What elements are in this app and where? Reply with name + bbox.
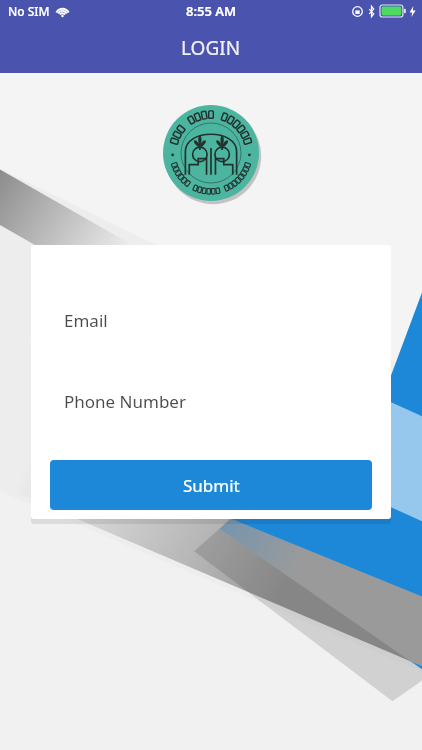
button[interactable]: Email: [31, 307, 391, 333]
staticText: Submit: [183, 474, 240, 497]
staticText: Phone Number: [64, 390, 186, 413]
button[interactable]: Phone Number: [31, 388, 391, 414]
staticText: No SIM: [8, 3, 50, 19]
staticText: LOGIN: [181, 35, 241, 61]
staticText: 8:55 AM: [186, 2, 237, 20]
staticText: Email: [64, 309, 108, 332]
button[interactable]: Submit: [50, 460, 372, 510]
